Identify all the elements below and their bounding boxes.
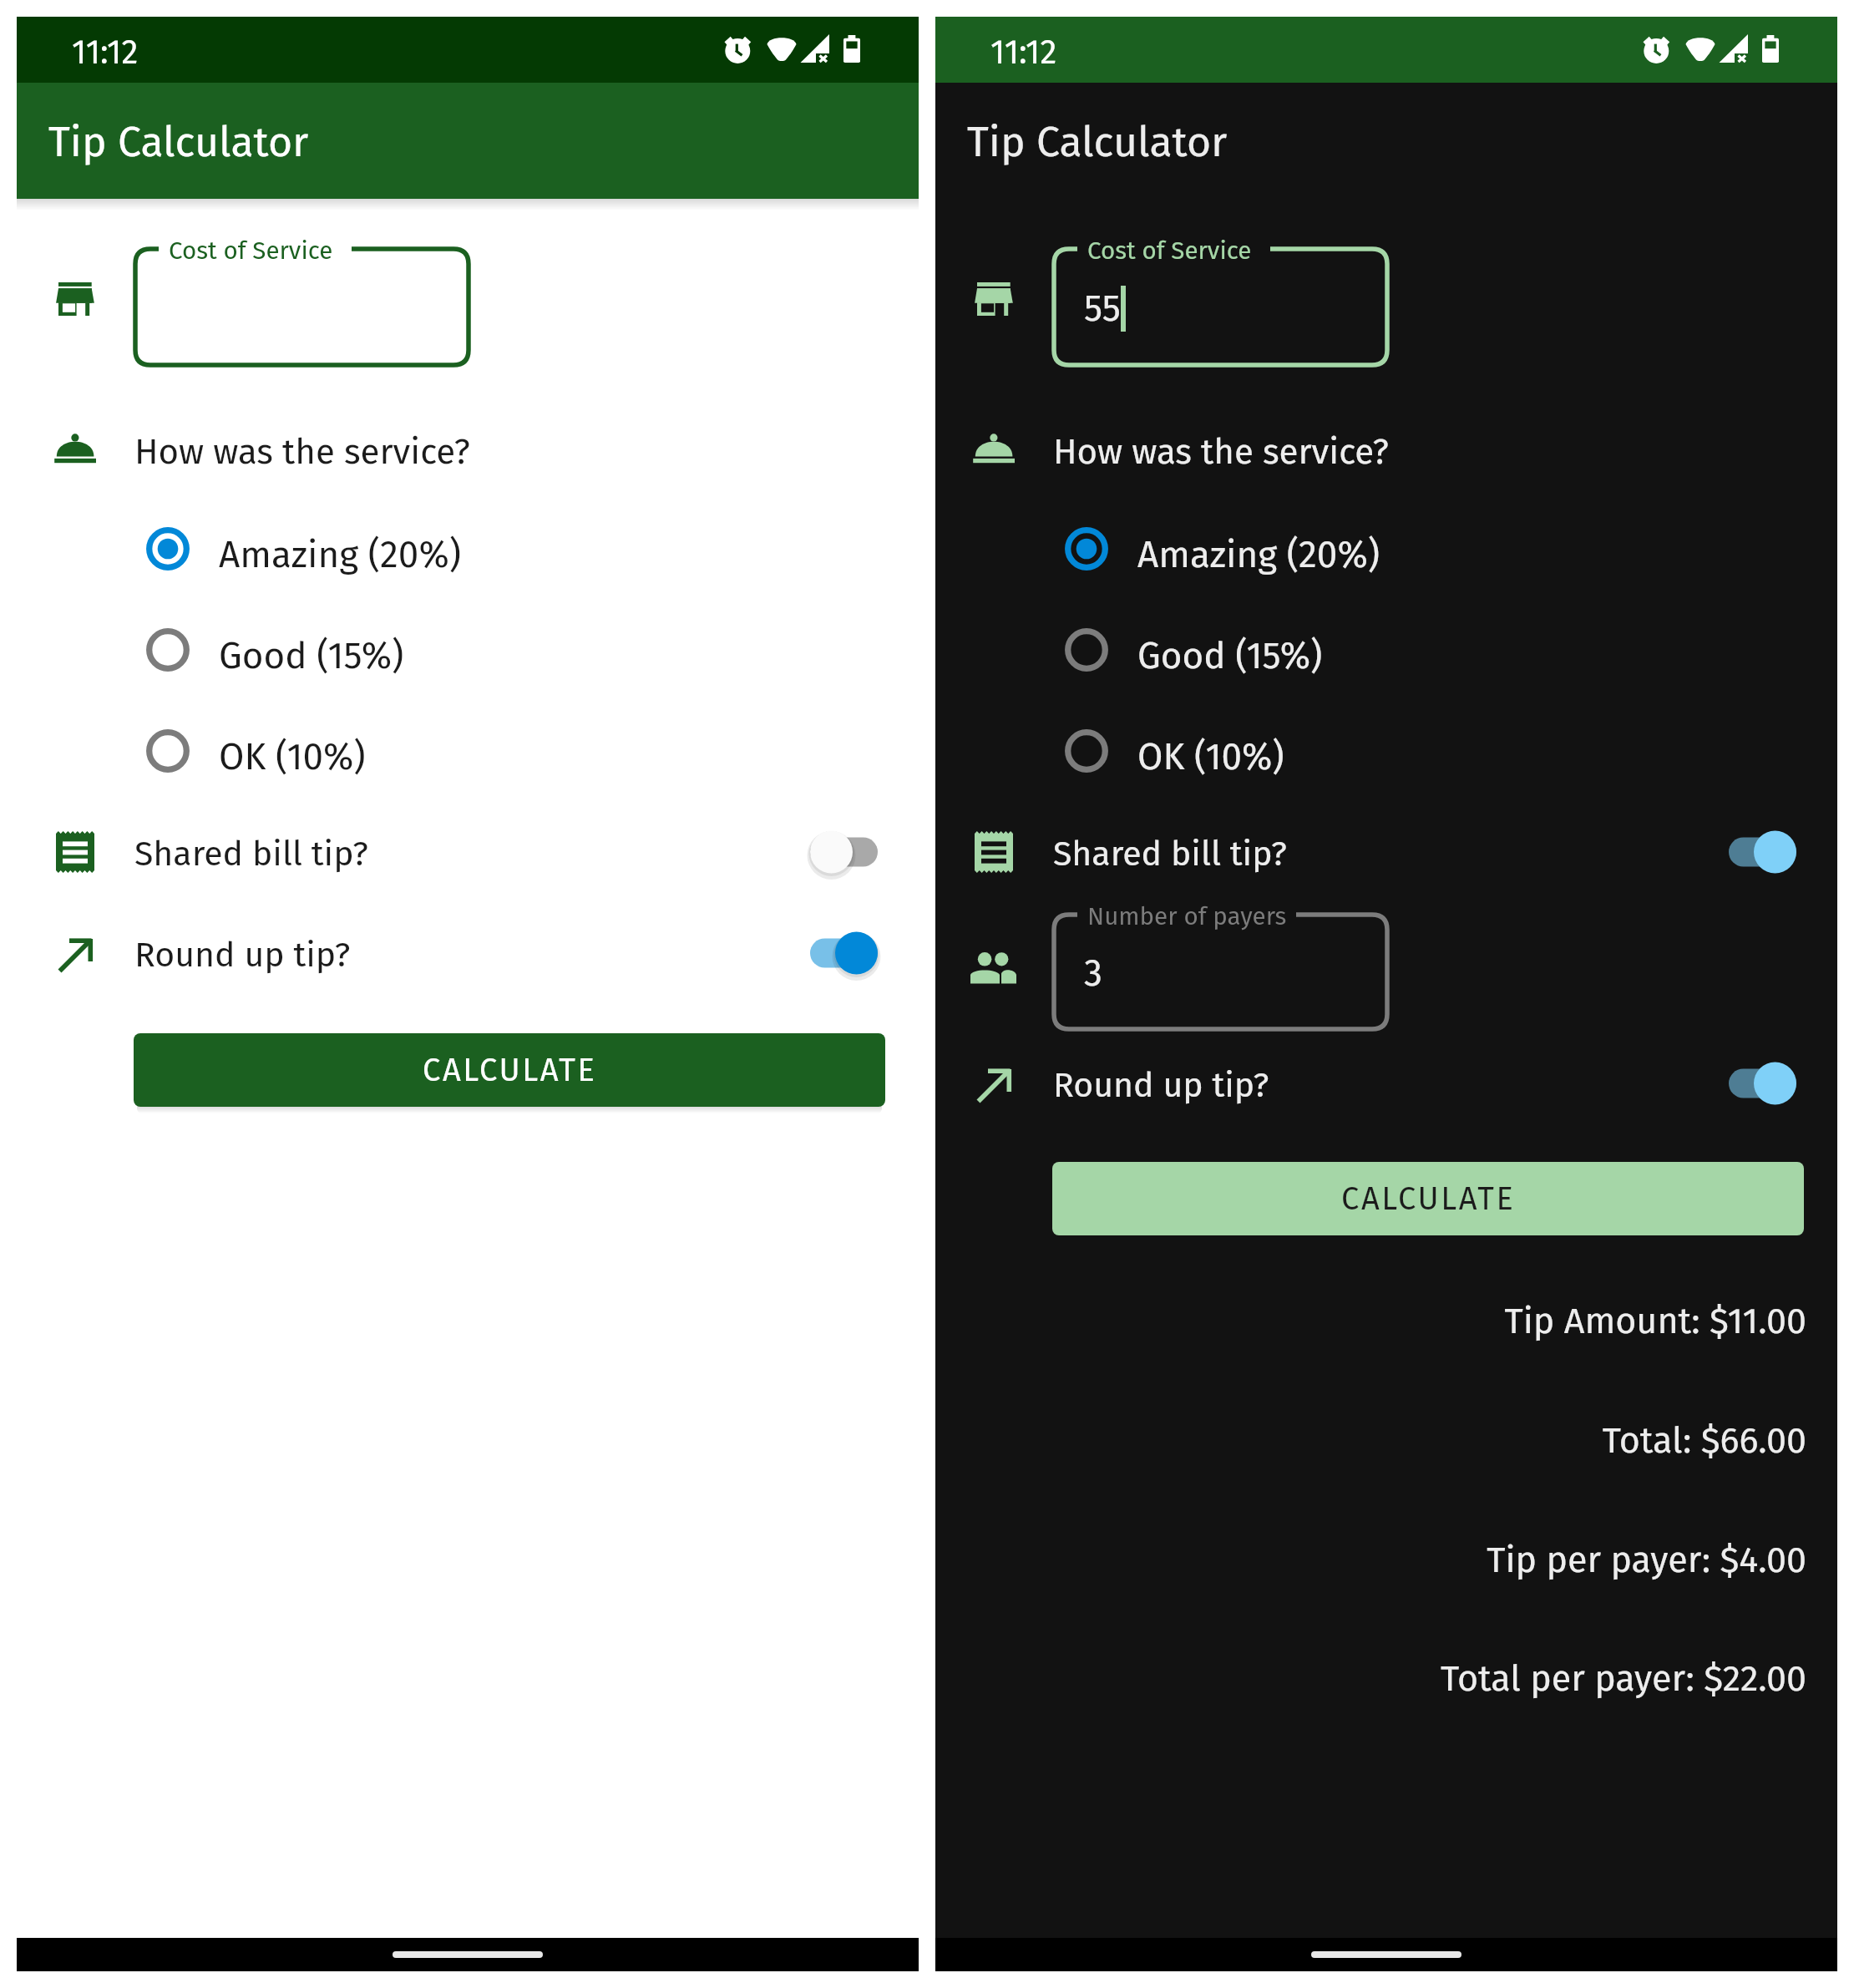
staticText: 3 bbox=[1084, 951, 1102, 996]
button[interactable]: Shared bill tip bbox=[17, 802, 919, 902]
staticText: Round up tip? bbox=[134, 935, 351, 976]
other: Service quality bbox=[972, 433, 1016, 476]
staticText: 11:12 bbox=[990, 33, 1057, 73]
button[interactable]: Round up tip bbox=[935, 1033, 1837, 1133]
staticText: How was the service? bbox=[134, 431, 470, 473]
button[interactable]: Round up tip bbox=[17, 903, 919, 1003]
other: Round up tip bbox=[53, 931, 97, 975]
staticText: Tip Calculator bbox=[967, 117, 1228, 167]
staticText: Shared bill tip? bbox=[1053, 834, 1287, 875]
button[interactable]: Cost of Service bbox=[1054, 249, 1387, 365]
other: Number of payers bbox=[970, 952, 1017, 986]
button[interactable]: CALCULATE bbox=[1052, 1162, 1804, 1235]
button[interactable]: OK (10%) bbox=[17, 701, 919, 801]
other: Shared bill tip bbox=[53, 830, 97, 874]
staticText: Good (15%) bbox=[219, 634, 404, 678]
staticText: Tip Calculator bbox=[48, 117, 309, 167]
staticText: OK (10%) bbox=[219, 735, 366, 779]
staticText: How was the service? bbox=[1053, 431, 1389, 473]
button[interactable]: Amazing (20%) bbox=[935, 499, 1837, 599]
staticText: CALCULATE bbox=[1341, 1179, 1516, 1218]
staticText: Total per payer: $22.00 bbox=[935, 1657, 1806, 1701]
staticText: CALCULATE bbox=[423, 1051, 597, 1089]
other: Cost of service bbox=[975, 282, 1015, 322]
staticText: OK (10%) bbox=[1137, 735, 1284, 779]
button[interactable]: Cost of Service bbox=[135, 249, 469, 365]
staticText: Tip per payer: $4.00 bbox=[935, 1539, 1806, 1582]
button[interactable]: OK (10%) bbox=[935, 701, 1837, 801]
other: Round up tip bbox=[972, 1062, 1016, 1105]
button[interactable]: Good (15%) bbox=[935, 600, 1837, 700]
staticText: Cost of Service bbox=[169, 236, 333, 265]
other: Cost of service bbox=[56, 282, 96, 322]
button[interactable]: Amazing (20%) bbox=[17, 499, 919, 599]
staticText: 55 bbox=[1084, 287, 1121, 331]
staticText: Number of payers bbox=[1087, 901, 1287, 931]
button[interactable]: Shared bill tip bbox=[935, 802, 1837, 902]
staticText: Cost of Service bbox=[1087, 236, 1252, 265]
staticText: Round up tip? bbox=[1053, 1065, 1269, 1106]
button[interactable]: Good (15%) bbox=[17, 600, 919, 700]
staticText: Total: $66.00 bbox=[935, 1419, 1806, 1463]
staticText: Good (15%) bbox=[1137, 634, 1323, 678]
staticText: Amazing (20%) bbox=[1137, 533, 1380, 577]
staticText: Shared bill tip? bbox=[134, 834, 368, 875]
button[interactable]: Number of payers bbox=[1054, 915, 1387, 1029]
staticText: 11:12 bbox=[72, 33, 139, 73]
other: Service quality bbox=[53, 433, 97, 476]
staticText: Tip Amount: $11.00 bbox=[935, 1300, 1806, 1343]
button[interactable]: CALCULATE bbox=[134, 1033, 885, 1107]
staticText: Amazing (20%) bbox=[219, 533, 462, 577]
other: Shared bill tip bbox=[972, 830, 1016, 874]
